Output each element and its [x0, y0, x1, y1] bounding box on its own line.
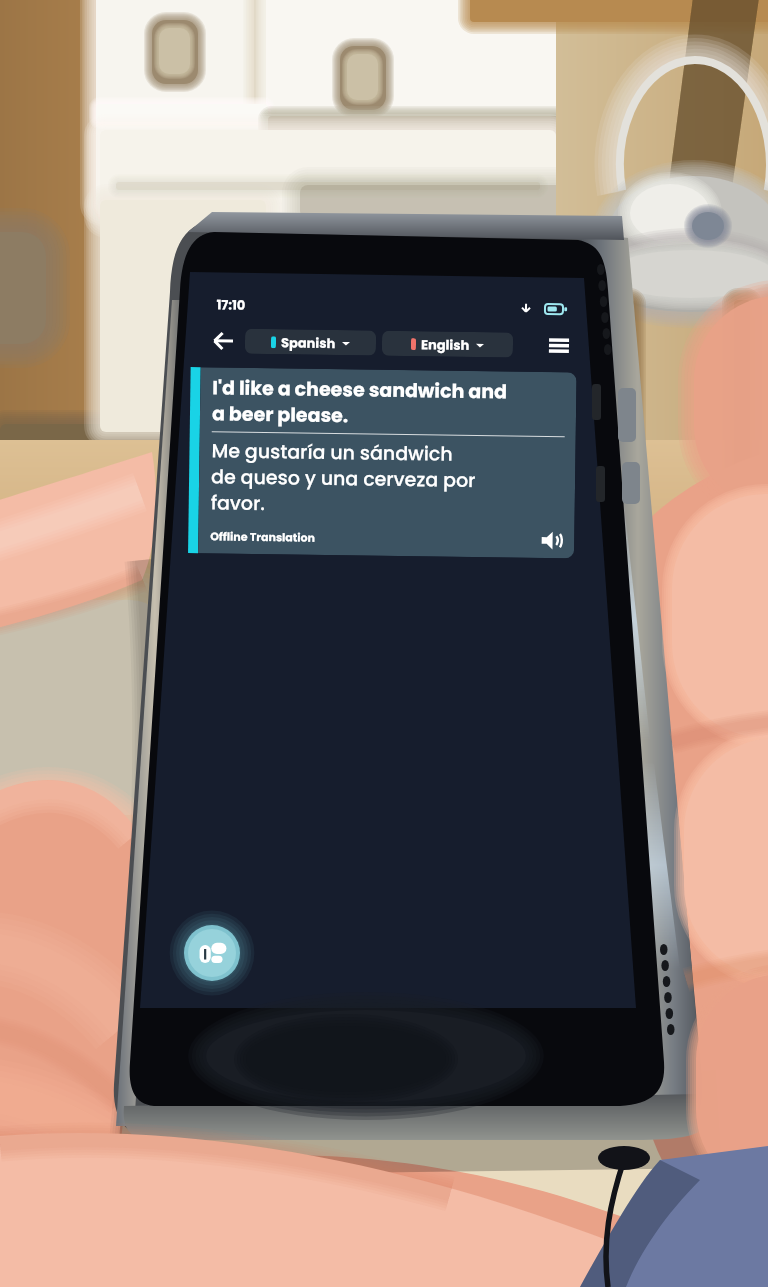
button[interactable]: I'd like a cheese sandwich and a beer pl… — [188, 367, 577, 558]
staticText: 17:10 — [216, 295, 246, 314]
staticText: Offline Translation — [210, 528, 315, 545]
button[interactable]: English — [382, 331, 513, 357]
button[interactable]: Spanish — [245, 329, 376, 356]
button[interactable]: Voice input — [184, 925, 241, 982]
staticText: Me gustaría un sándwich de queso y una c… — [211, 437, 477, 520]
staticText: English — [421, 335, 470, 354]
button[interactable]: Back — [210, 327, 236, 354]
staticText: I'd like a cheese sandwich and a beer pl… — [212, 374, 507, 431]
button[interactable]: Play translation audio — [539, 528, 563, 552]
staticText: Spanish — [281, 333, 336, 352]
button[interactable]: Menu — [546, 332, 572, 358]
